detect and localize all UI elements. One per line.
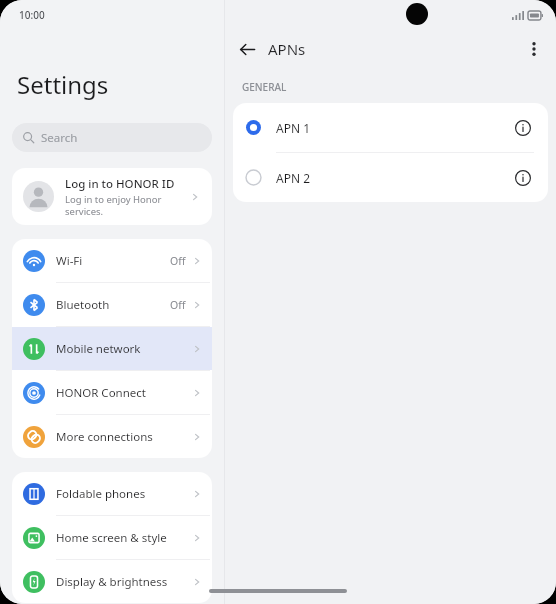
staticText: HONOR Connect: [56, 385, 191, 401]
staticText: Home screen & style: [56, 530, 191, 546]
staticText: 10:00: [19, 8, 45, 22]
button[interactable]: Back: [231, 33, 263, 65]
staticText: Settings: [17, 68, 109, 101]
staticText: Display & brightness: [56, 574, 191, 590]
button[interactable]: Log in to HONOR ID: [12, 168, 212, 225]
button[interactable]: APN 1: [233, 103, 548, 152]
button[interactable]: HONOR Connect: [12, 371, 212, 414]
button[interactable]: Display & brightness: [12, 560, 212, 603]
staticText: Log in to enjoy Honor services.: [65, 193, 189, 218]
button[interactable]: Foldable phones: [12, 472, 212, 515]
staticText: APN 1: [276, 120, 510, 136]
staticText: Wi-Fi: [56, 253, 170, 269]
button[interactable]: Home screen & style: [12, 516, 212, 559]
button[interactable]: APN 2: [233, 153, 548, 202]
button[interactable]: APN details: [510, 165, 536, 191]
button[interactable]: APN details: [510, 115, 536, 141]
button[interactable]: Wi-Fi: [12, 239, 212, 282]
button[interactable]: More connections: [12, 415, 212, 458]
button[interactable]: Search: [12, 123, 212, 152]
button[interactable]: Mobile network: [12, 327, 212, 370]
staticText: Off: [170, 254, 186, 268]
staticText: Bluetooth: [56, 297, 170, 313]
button[interactable]: Bluetooth: [12, 283, 212, 326]
staticText: More connections: [56, 429, 191, 445]
button[interactable]: More options: [518, 33, 550, 65]
staticText: Off: [170, 298, 186, 312]
staticText: APNs: [268, 39, 306, 59]
staticText: GENERAL: [242, 80, 287, 94]
staticText: Mobile network: [56, 341, 191, 357]
staticText: Log in to HONOR ID: [65, 176, 175, 192]
staticText: Foldable phones: [56, 486, 191, 502]
staticText: APN 2: [276, 170, 510, 186]
staticText: Search: [41, 130, 78, 146]
